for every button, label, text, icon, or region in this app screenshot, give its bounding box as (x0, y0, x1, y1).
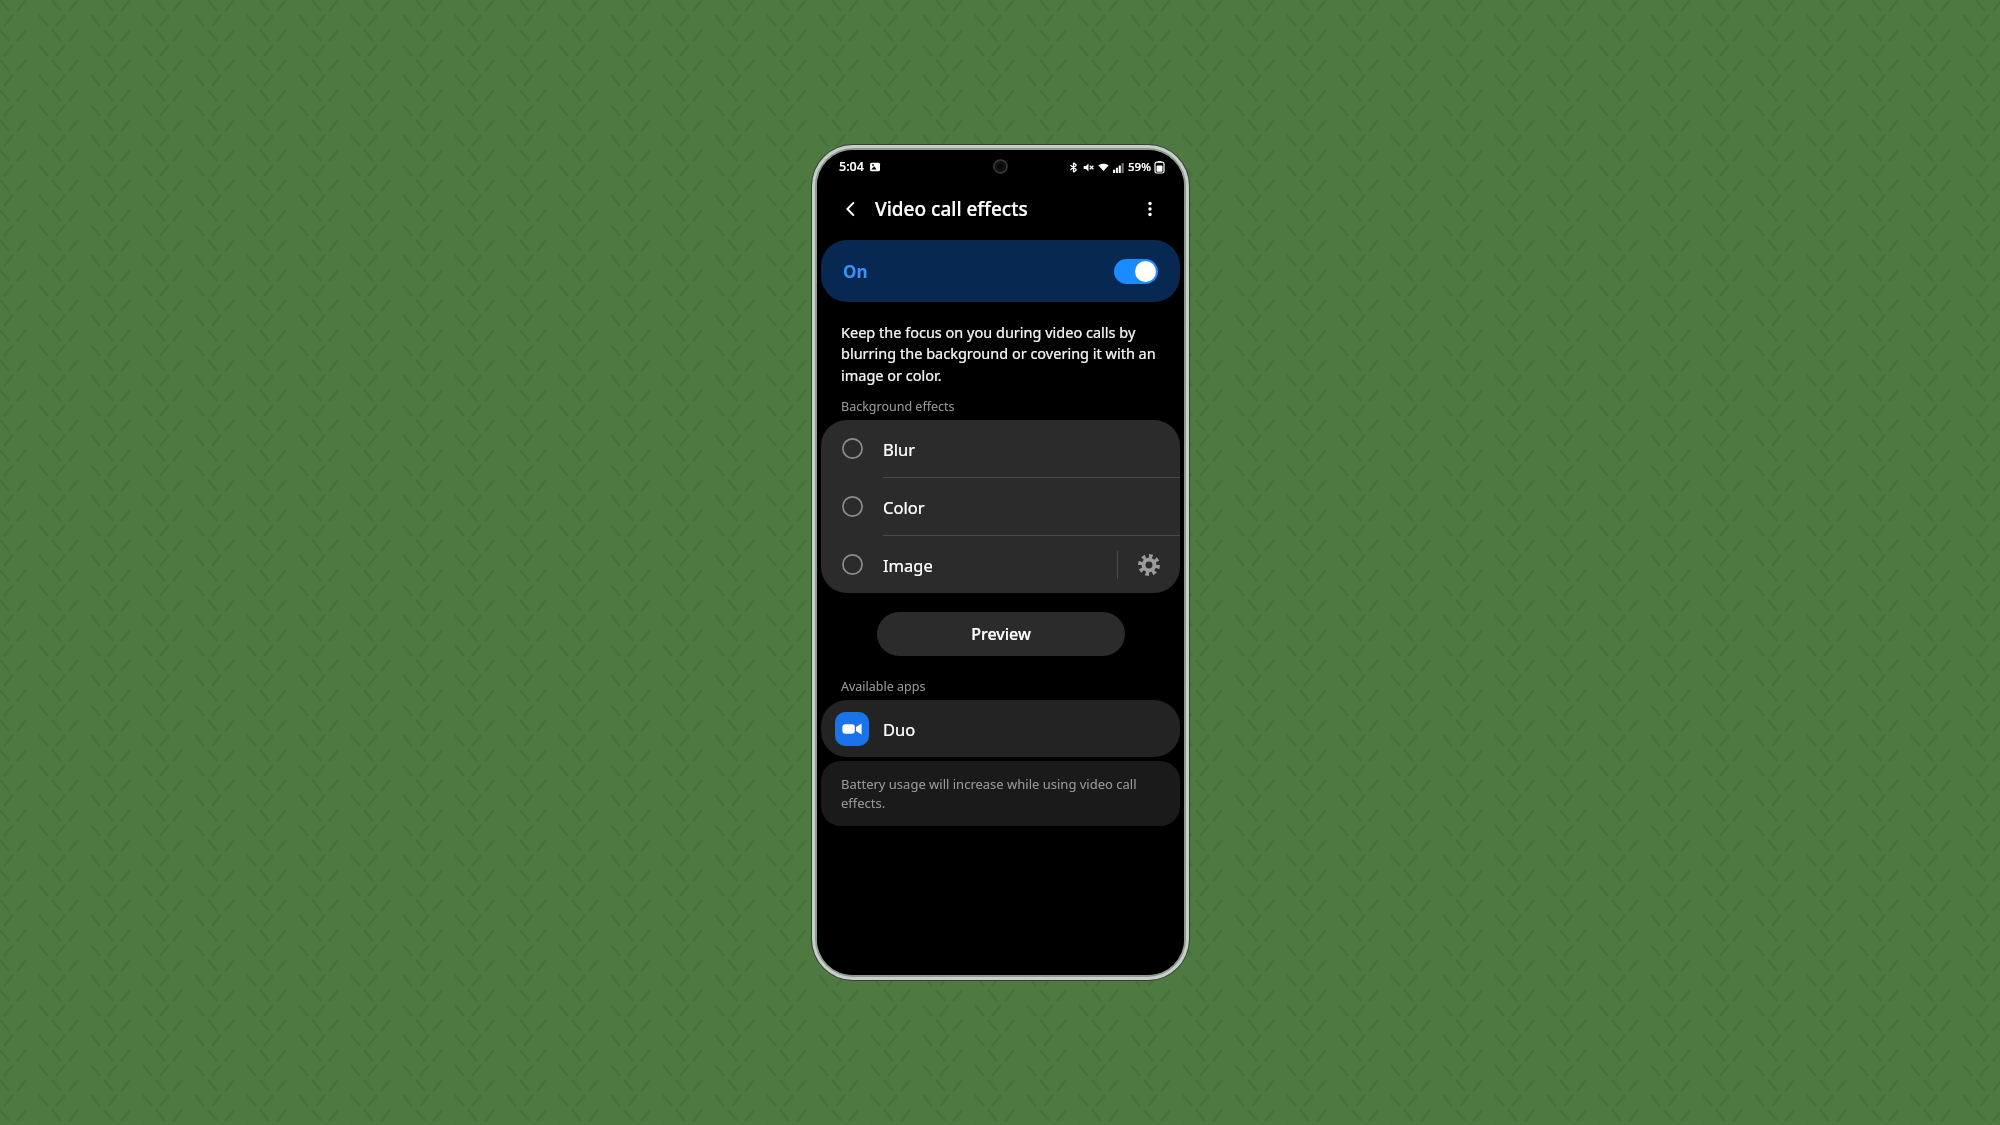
staticText: 5:04 (839, 158, 864, 175)
staticText: Video call effects (875, 196, 1028, 222)
button[interactable]: On (821, 240, 1180, 302)
staticText: Keep the focus on you during video calls… (841, 322, 1160, 386)
staticText: On (843, 260, 868, 283)
staticText: Available apps (841, 678, 1160, 695)
staticText: Duo (883, 718, 916, 740)
button[interactable]: Back (831, 189, 871, 229)
button[interactable]: Preview (877, 612, 1125, 656)
staticText: Background effects (841, 398, 1160, 415)
staticText: Battery usage will increase while using … (841, 775, 1160, 812)
staticText: Blur (883, 438, 915, 460)
button[interactable]: Color (821, 478, 1180, 535)
button[interactable]: More options (1130, 189, 1170, 229)
staticText: Image (883, 554, 933, 576)
button[interactable]: Duo (821, 700, 1180, 757)
button[interactable]: Image (821, 536, 1180, 593)
staticText: Preview (971, 623, 1031, 645)
button[interactable]: Image settings (1118, 536, 1180, 593)
button[interactable]: Blur (821, 420, 1180, 477)
staticText: Color (883, 496, 925, 518)
staticText: 59% (1128, 159, 1151, 175)
